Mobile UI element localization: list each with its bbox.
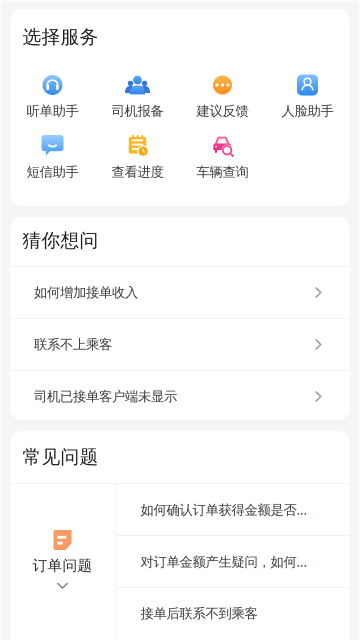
staticText: 猜你想问 — [22, 229, 98, 252]
staticText: 人脸助手 — [281, 103, 333, 119]
button[interactable]: 司机已接单客户端未显示 — [10, 371, 350, 422]
button[interactable]: 查看进度 — [95, 126, 180, 187]
button[interactable]: 人脸助手 — [265, 65, 350, 126]
staticText: 如何增加接单收入 — [34, 284, 138, 301]
staticText: 接单后联系不到乘客 — [140, 605, 257, 622]
staticText: 查看进度 — [111, 164, 163, 180]
button[interactable]: 听单助手 — [10, 65, 95, 126]
staticText: 建议反馈 — [196, 103, 248, 119]
staticText: 司机报备 — [111, 103, 163, 119]
button[interactable]: 如何增加接单收入 — [10, 267, 350, 318]
button[interactable]: 短信助手 — [10, 126, 95, 187]
button[interactable]: 车辆查询 — [180, 126, 265, 187]
staticText: 听单助手 — [26, 103, 78, 119]
button[interactable]: 联系不上乘客 — [10, 319, 350, 370]
staticText: 车辆查询 — [196, 164, 248, 180]
staticText: 短信助手 — [26, 164, 78, 180]
staticText: 联系不上乘客 — [34, 336, 112, 353]
staticText: 对订单金额产生疑问，如何… — [140, 553, 307, 570]
button[interactable]: 接单后联系不到乘客 — [116, 588, 350, 639]
staticText: 订单问题 — [32, 556, 92, 574]
staticText: 如何确认订单获得金额是否… — [140, 501, 307, 518]
button[interactable]: 司机报备 — [95, 65, 180, 126]
button[interactable]: 如何确认订单获得金额是否… — [116, 484, 350, 535]
button[interactable]: 建议反馈 — [180, 65, 265, 126]
button[interactable]: 订单问题 — [10, 484, 115, 640]
staticText: 常见问题 — [22, 445, 98, 468]
staticText: 司机已接单客户端未显示 — [34, 388, 177, 405]
button[interactable]: 对订单金额产生疑问，如何… — [116, 536, 350, 587]
staticText: 选择服务 — [22, 25, 98, 48]
